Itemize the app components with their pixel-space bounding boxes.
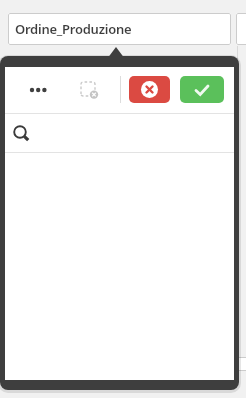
button[interactable]: [21, 78, 55, 102]
button[interactable]: [180, 76, 224, 103]
button[interactable]: [129, 76, 170, 103]
button[interactable]: Ordine_Produzione: [8, 13, 231, 45]
button[interactable]: [5, 114, 234, 152]
button[interactable]: [75, 76, 103, 104]
staticText: Ordine_Produzione: [15, 20, 132, 38]
